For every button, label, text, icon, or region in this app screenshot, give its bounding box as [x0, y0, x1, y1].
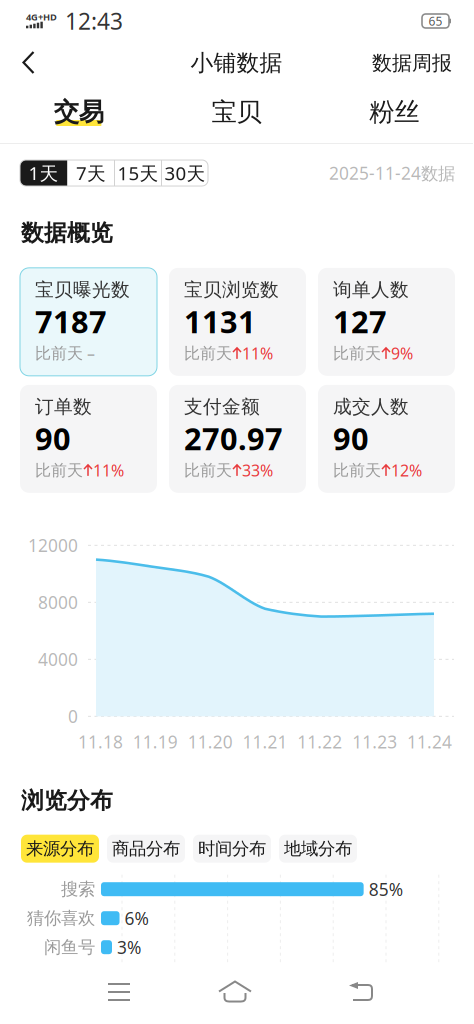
button[interactable]: Recents: [76, 972, 162, 1012]
staticText: 1131: [184, 301, 256, 342]
button[interactable]: 地域分布: [279, 835, 357, 863]
staticText: 7187: [35, 301, 107, 342]
staticText: 比前天: [333, 343, 381, 363]
staticText: 成交人数: [333, 395, 409, 418]
staticText: 9%: [391, 343, 413, 364]
staticText: 33%: [242, 460, 273, 481]
staticText: 0: [68, 705, 78, 728]
staticText: 270.97: [184, 418, 283, 459]
staticText: 11.19: [133, 730, 178, 753]
staticText: 4000: [38, 648, 78, 671]
staticText: 85%: [369, 878, 403, 901]
staticText: 90: [35, 418, 71, 459]
button[interactable]: Back: [10, 43, 48, 83]
button[interactable]: 时间分布: [193, 835, 271, 863]
staticText: 宝贝: [211, 96, 261, 127]
staticText: 粉丝: [369, 96, 419, 127]
staticText: 127: [333, 301, 387, 342]
staticText: 15天: [117, 161, 158, 185]
staticText: 比前天: [184, 460, 232, 480]
staticText: 地域分布: [284, 838, 352, 859]
button[interactable]: 支付金额: [169, 385, 306, 493]
staticText: 询单人数: [333, 278, 409, 301]
staticText: 订单数: [35, 395, 92, 418]
staticText: –: [83, 343, 95, 364]
staticText: 11.22: [297, 730, 342, 753]
button[interactable]: 数据周报: [372, 43, 452, 83]
staticText: 11.20: [188, 730, 233, 753]
staticText: 小铺数据: [190, 49, 282, 77]
staticText: 数据周报: [372, 51, 452, 75]
staticText: 11.21: [242, 730, 287, 753]
button[interactable]: 来源分布: [21, 835, 99, 863]
staticText: 12000: [28, 534, 78, 557]
staticText: 11.18: [78, 730, 123, 753]
staticText: 浏览分布: [21, 787, 113, 815]
staticText: 数据概览: [21, 219, 113, 247]
staticText: 来源分布: [26, 838, 94, 859]
button[interactable]: 宝贝浏览数: [169, 268, 306, 376]
button[interactable]: 30天: [161, 160, 208, 186]
staticText: 12:43: [65, 6, 123, 36]
button[interactable]: 询单人数: [318, 268, 455, 376]
staticText: 65: [428, 13, 442, 29]
staticText: 比前天: [35, 460, 83, 480]
staticText: 4G+HD: [26, 11, 57, 23]
button[interactable]: 粉丝: [315, 91, 473, 133]
staticText: 闲鱼号: [44, 936, 95, 958]
staticText: 宝贝曝光数: [35, 278, 130, 301]
staticText: 比前天: [35, 343, 83, 363]
staticText: 比前天: [333, 460, 381, 480]
staticText: 11%: [93, 460, 124, 481]
button[interactable]: 交易: [0, 91, 158, 133]
staticText: 12%: [391, 460, 422, 481]
staticText: 11.24: [407, 730, 452, 753]
staticText: 30天: [164, 161, 205, 185]
staticText: 搜索: [61, 878, 95, 900]
staticText: 商品分布: [112, 838, 180, 859]
staticText: 6%: [124, 907, 148, 930]
button[interactable]: 7天: [67, 160, 114, 186]
staticText: 1天: [28, 161, 58, 185]
staticText: 3%: [117, 936, 141, 959]
staticText: 8000: [38, 591, 78, 614]
button[interactable]: 1天: [20, 160, 67, 186]
staticText: 7天: [76, 161, 106, 185]
staticText: 猜你喜欢: [27, 907, 95, 929]
button[interactable]: 商品分布: [107, 835, 185, 863]
button[interactable]: 15天: [114, 160, 161, 186]
button[interactable]: 订单数: [20, 385, 157, 493]
staticText: 比前天: [184, 343, 232, 363]
staticText: 90: [333, 418, 369, 459]
staticText: 交易: [54, 96, 104, 127]
staticText: 时间分布: [198, 838, 266, 859]
staticText: 支付金额: [184, 395, 260, 418]
button[interactable]: Back: [308, 972, 414, 1012]
button[interactable]: 成交人数: [318, 385, 455, 493]
staticText: 11%: [242, 343, 273, 364]
staticText: 宝贝浏览数: [184, 278, 279, 301]
button[interactable]: Home: [162, 972, 308, 1012]
staticText: 11.23: [352, 730, 397, 753]
button[interactable]: 宝贝曝光数: [20, 268, 157, 376]
button[interactable]: 宝贝: [158, 91, 315, 133]
staticText: 2025-11-24数据: [329, 161, 455, 184]
